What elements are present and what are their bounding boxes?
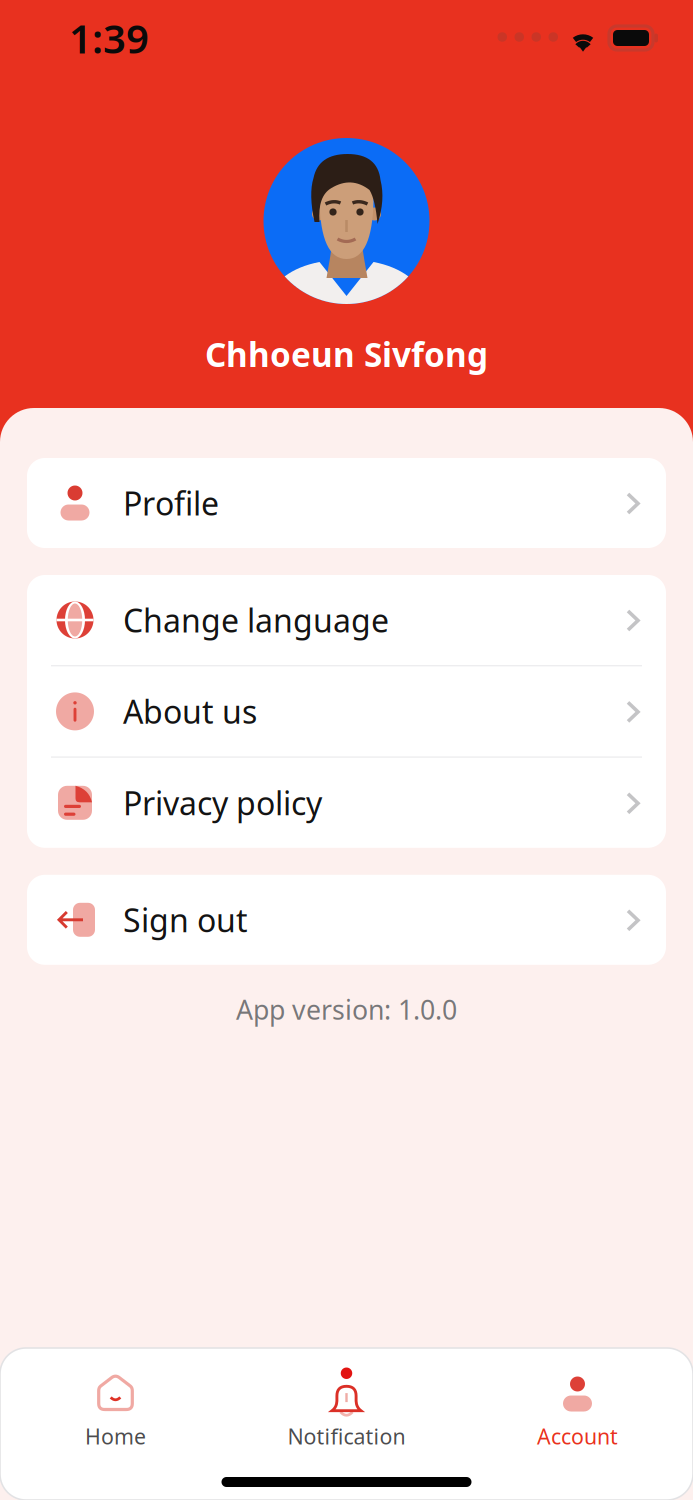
button[interactable]: Home — [0, 1367, 231, 1450]
button[interactable]: Profile — [27, 458, 666, 548]
staticText: 1:39 — [69, 11, 149, 64]
button[interactable]: Account — [462, 1367, 693, 1450]
staticText: Change language — [123, 599, 389, 641]
staticText: Privacy policy — [123, 782, 322, 824]
staticText: Profile — [123, 482, 219, 524]
staticText: Sign out — [123, 899, 248, 941]
staticText: Notification — [287, 1422, 405, 1450]
staticText: Chhoeun Sivfong — [205, 332, 488, 376]
staticText: Account — [537, 1422, 618, 1450]
staticText: Home — [85, 1422, 146, 1450]
staticText: About us — [123, 690, 257, 733]
button[interactable]: About us — [27, 666, 666, 756]
button[interactable]: Change language — [27, 575, 666, 665]
button[interactable]: Sign out — [27, 875, 666, 965]
button[interactable]: Privacy policy — [27, 758, 666, 848]
staticText: App version: 1.0.0 — [236, 992, 457, 1027]
button[interactable]: Notification — [231, 1367, 462, 1450]
